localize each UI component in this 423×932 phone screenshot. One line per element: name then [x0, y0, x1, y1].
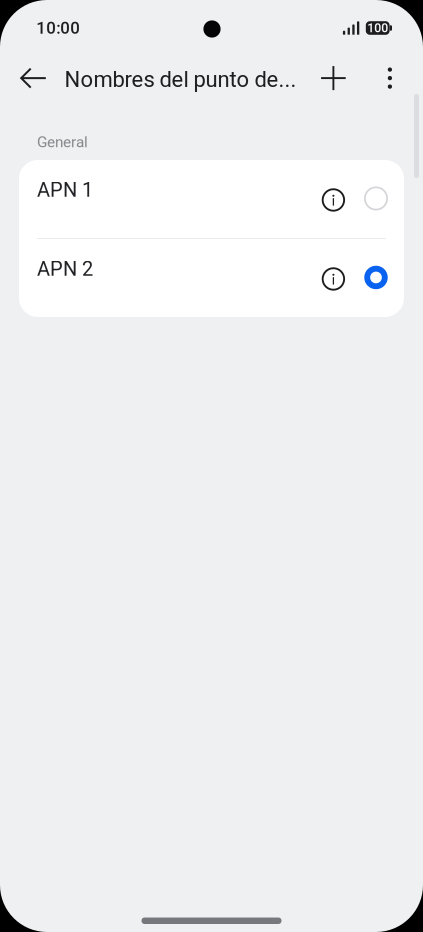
staticText: APN 1: [37, 178, 93, 202]
button[interactable]: APN 1: [19, 160, 404, 238]
button[interactable]: Añadir APN: [311, 56, 373, 102]
button[interactable]: Información de APN: [319, 160, 348, 238]
button[interactable]: APN 2: [19, 239, 404, 317]
button[interactable]: Más opciones: [373, 56, 406, 102]
button[interactable]: Seleccionar APN: [348, 160, 404, 238]
staticText: General: [37, 133, 88, 151]
button[interactable]: Información de APN: [319, 239, 348, 317]
button[interactable]: Atrás: [10, 56, 57, 102]
staticText: 100: [367, 21, 388, 35]
staticText: Nombres del punto de...: [64, 67, 296, 92]
staticText: APN 2: [37, 257, 93, 281]
button[interactable]: APN seleccionado: [348, 239, 404, 317]
staticText: 10:00: [36, 18, 80, 38]
